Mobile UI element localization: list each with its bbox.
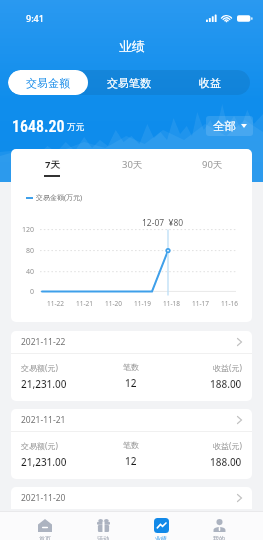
staticText: 交易金额 [26,76,70,90]
staticText: 12-07 ¥80 [142,217,184,229]
staticText: 11-18 [163,299,180,308]
staticText: 收益(元) [213,362,242,373]
staticText: 120 [22,225,35,235]
staticText: 188.00 [210,377,242,391]
staticText: 收益 [199,76,221,90]
staticText: 业绩 [155,535,167,540]
button[interactable]: 7天 [11,149,92,180]
staticText: 11-21 [76,299,93,308]
button[interactable]: 我的 [190,512,248,540]
staticText: 11-20 [105,299,122,308]
staticText: 188.00 [210,455,242,469]
staticText: 交易额(元) [21,440,58,451]
button[interactable]: 业绩 [132,512,190,540]
staticText: 40 [26,267,35,277]
staticText: 万元 [67,122,84,133]
other: Details [237,494,242,502]
button[interactable]: 交易笔数 [88,70,169,95]
staticText: 21,231.00 [21,377,67,391]
staticText: 笔数 [123,362,139,372]
staticText: 80 [26,246,35,256]
button[interactable]: 2021-11-21 [11,409,252,479]
button[interactable]: 30天 [92,149,172,180]
staticText: 2021-11-20 [21,492,66,504]
staticText: 交易额(元) [21,362,58,373]
button[interactable]: 90天 [172,149,252,180]
other: Details [237,338,242,346]
staticText: 11-22 [47,299,64,308]
staticText: 12 [125,454,137,468]
staticText: 30天 [122,158,143,171]
staticText: 12 [125,376,137,390]
staticText: 首页 [39,535,51,540]
button[interactable]: 首页 [15,512,74,540]
staticText: 交易金额(万元) [36,193,83,203]
staticText: 9:41 [26,12,44,24]
staticText: 交易笔数 [107,76,151,90]
staticText: 收益(元) [213,440,242,451]
staticText: 0 [30,287,35,297]
staticText: 笔数 [123,440,139,450]
button[interactable]: 活动 [74,512,132,540]
button[interactable]: 全部 [206,116,253,136]
button[interactable]: 交易金额 [8,70,88,95]
staticText: 11-19 [134,299,151,308]
staticText: 21,231.00 [21,455,67,469]
staticText: 我的 [213,535,225,540]
staticText: 活动 [97,535,109,540]
button[interactable]: 2021-11-22 [11,331,252,401]
staticText: 2021-11-22 [21,336,66,348]
button[interactable]: 收益 [169,70,250,95]
staticText: 11-17 [192,299,209,308]
staticText: 7天 [45,158,60,171]
staticText: 1648.20 [12,117,65,136]
staticText: 全部 [213,119,236,133]
staticText: 2021-11-21 [21,414,66,426]
staticText: 11-16 [221,299,238,308]
staticText: 业绩 [119,38,145,54]
staticText: 90天 [202,158,223,171]
button[interactable]: 2021-11-20 [11,487,252,509]
other: Details [237,416,242,424]
